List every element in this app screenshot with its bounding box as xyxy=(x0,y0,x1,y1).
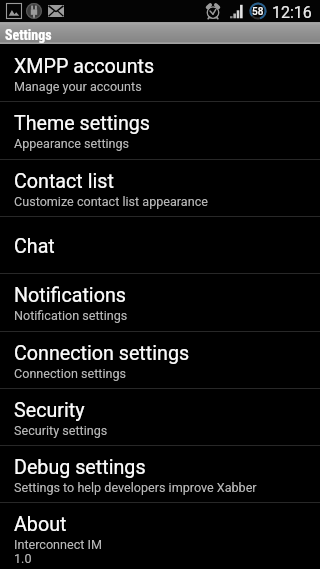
staticText: Notifications xyxy=(14,284,126,307)
staticText: Contact list xyxy=(14,170,114,193)
staticText: 12:16 xyxy=(272,3,312,22)
button[interactable]: Connection settings xyxy=(0,331,320,388)
staticText: Manage your accounts xyxy=(14,79,142,94)
staticText: About xyxy=(14,513,67,536)
staticText: Connection settings xyxy=(14,366,127,381)
button[interactable]: XMPP accounts xyxy=(0,44,320,101)
other: Screenshot captured xyxy=(6,3,22,19)
button[interactable]: Security xyxy=(0,388,320,445)
button[interactable]: Notifications xyxy=(0,273,320,331)
staticText: Security xyxy=(14,399,85,422)
other: Alarm set xyxy=(205,3,221,19)
staticText: Debug settings xyxy=(14,456,146,479)
other: Battery 58 percent xyxy=(249,2,267,20)
staticText: Customize contact list appearance xyxy=(14,194,208,209)
button[interactable]: Debug settings xyxy=(0,445,320,502)
staticText: Settings to help developers improve Xabb… xyxy=(14,480,257,495)
staticText: Notification settings xyxy=(14,308,128,323)
button[interactable]: Chat xyxy=(0,216,320,273)
staticText: XMPP accounts xyxy=(14,55,155,78)
staticText: Appearance settings xyxy=(14,136,130,151)
other: New message xyxy=(48,5,64,17)
staticText: Security settings xyxy=(14,423,108,438)
other: USB connected xyxy=(26,3,42,19)
staticText: Interconnect IM 1.0 xyxy=(14,537,102,566)
staticText: Chat xyxy=(14,235,55,258)
button[interactable]: About xyxy=(0,502,320,569)
staticText: Settings xyxy=(5,27,52,43)
other: Signal strength xyxy=(230,4,244,19)
staticText: Connection settings xyxy=(14,342,190,365)
button[interactable]: Contact list xyxy=(0,159,320,216)
staticText: 58 xyxy=(252,6,264,18)
button[interactable]: Theme settings xyxy=(0,101,320,159)
staticText: Theme settings xyxy=(14,112,150,135)
